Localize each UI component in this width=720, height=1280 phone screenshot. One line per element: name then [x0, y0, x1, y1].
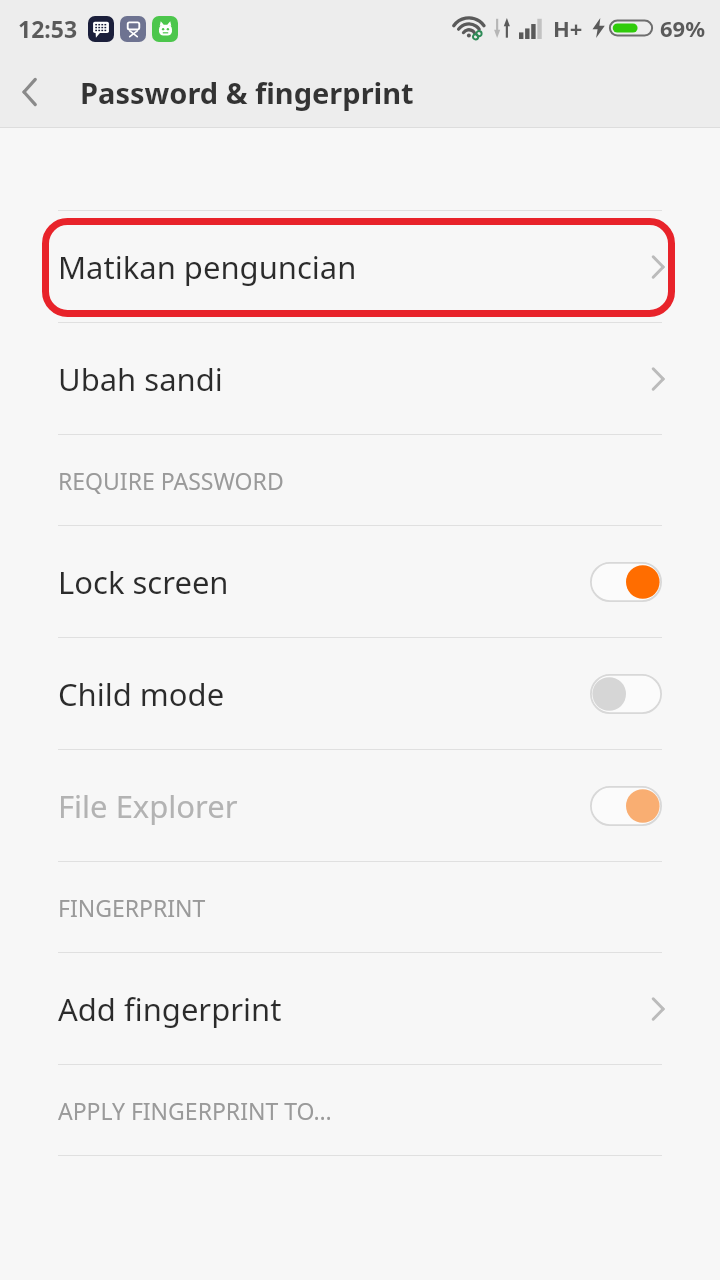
staticText: 69% [660, 13, 706, 43]
button[interactable]: Ubah sandi [0, 323, 720, 434]
staticText: Password & fingerprint [80, 73, 414, 112]
staticText: Ubah sandi [58, 358, 223, 400]
button[interactable]: Matikan penguncian [0, 211, 720, 322]
staticText: Matikan penguncian [58, 246, 357, 288]
staticText: Child mode [58, 673, 225, 715]
staticText: APPLY FINGERPRINT TO… [58, 1095, 332, 1126]
button[interactable]: Add fingerprint [0, 953, 720, 1064]
staticText: FINGERPRINT [58, 892, 206, 923]
button[interactable]: Lock screen [0, 526, 720, 637]
staticText: H+ [553, 13, 583, 43]
staticText: File Explorer [58, 785, 238, 827]
staticText: Lock screen [58, 561, 229, 603]
button[interactable]: File Explorer [0, 750, 720, 861]
staticText: 12:53 [18, 13, 78, 44]
button[interactable]: Back [0, 56, 60, 128]
staticText: Add fingerprint [58, 988, 282, 1030]
staticText: REQUIRE PASSWORD [58, 465, 284, 496]
button[interactable]: Child mode [0, 638, 720, 749]
